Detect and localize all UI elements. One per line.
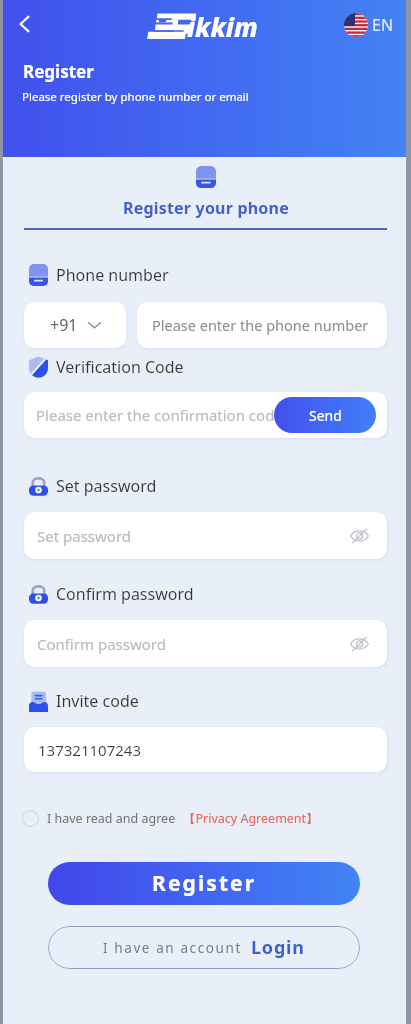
button[interactable]: I have read and agree xyxy=(22,810,319,827)
staticText: Send xyxy=(309,406,342,425)
staticText: ikkim xyxy=(187,9,258,44)
button[interactable]: Set password xyxy=(24,512,387,559)
button[interactable]: Confirm password xyxy=(24,620,387,667)
staticText: Confirm password xyxy=(37,634,166,654)
staticText: Confirm password xyxy=(56,583,194,605)
staticText: Invite code xyxy=(56,690,139,712)
staticText: Login xyxy=(251,935,305,960)
staticText: Register xyxy=(23,60,94,83)
button[interactable]: I have an account xyxy=(48,926,360,969)
button[interactable]: Show password xyxy=(347,632,371,656)
button[interactable]: Back xyxy=(6,6,42,42)
staticText: I have read and agree xyxy=(47,810,176,827)
button[interactable]: Please enter the phone number xyxy=(137,302,387,348)
staticText: Verification Code xyxy=(56,356,184,378)
staticText: Please register by phone number or email xyxy=(22,89,249,105)
staticText: Register xyxy=(152,869,257,898)
staticText: Please enter the confirmation code xyxy=(36,405,283,425)
staticText: Set password xyxy=(56,475,157,497)
button[interactable]: Please enter the confirmation code xyxy=(24,392,387,438)
button[interactable]: Language English xyxy=(344,13,394,37)
staticText: 137321107243 xyxy=(38,740,141,760)
button[interactable]: 137321107243 xyxy=(24,727,387,772)
button[interactable]: Show password xyxy=(347,524,371,548)
staticText: Phone number xyxy=(56,264,169,286)
staticText: Please enter the phone number xyxy=(152,315,369,335)
staticText: EN xyxy=(372,14,394,36)
staticText: Set password xyxy=(37,526,132,546)
staticText: +91 xyxy=(50,314,78,336)
staticText: 【Privacy Agreement】 xyxy=(183,810,319,827)
button[interactable]: Register xyxy=(48,862,360,905)
button[interactable]: Send xyxy=(274,397,376,433)
staticText: Register your phone xyxy=(123,197,289,219)
staticText: I have an account xyxy=(103,939,242,957)
button[interactable]: Country code +91 xyxy=(24,302,126,348)
